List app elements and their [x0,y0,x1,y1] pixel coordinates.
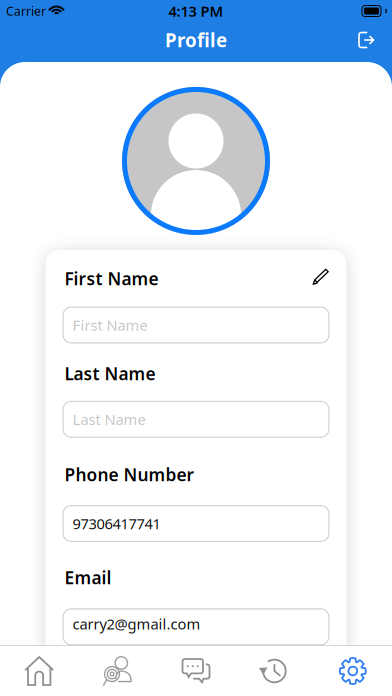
staticText: Phone Number [64,463,194,486]
staticText: 97306417741 [72,514,160,533]
button[interactable]: Home [0,646,78,696]
button[interactable]: History [235,646,314,696]
staticText: Profile [165,28,227,52]
button[interactable]: Log out [349,22,384,57]
button[interactable]: Settings [314,646,392,696]
staticText: 4:13 PM [168,1,223,21]
staticText: First Name [72,315,147,335]
button[interactable]: Chats [157,646,235,696]
button[interactable]: Delivery [78,646,157,696]
staticText: Last Name [64,362,155,385]
staticText: Carrier [6,3,46,19]
staticText: carry2@gmail.com [72,614,200,634]
staticText: Email [64,566,111,589]
button[interactable]: Edit [312,268,329,285]
staticText: First Name [64,267,158,290]
staticText: Last Name [72,410,145,429]
